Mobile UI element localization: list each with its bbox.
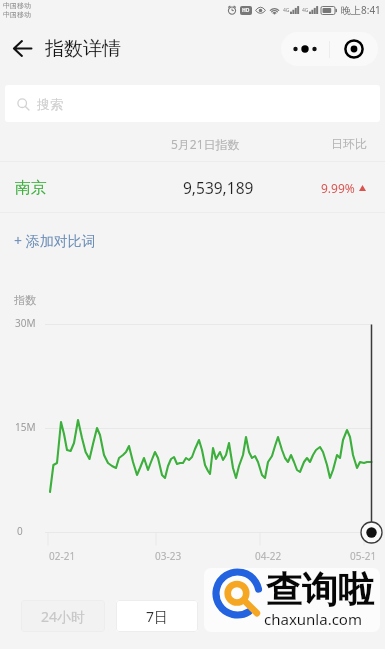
staticText: 02-21 [49, 549, 76, 563]
staticText: 晚上8:41 [341, 3, 381, 17]
staticText: + 添加对比词 [14, 231, 96, 250]
button[interactable]: 南京 [0, 162, 385, 213]
staticText: 30M [15, 316, 36, 330]
staticText: 30日 [236, 607, 267, 626]
staticText: 查询啦 [266, 568, 374, 612]
button[interactable]: + 添加对比词 [0, 213, 385, 273]
button[interactable]: 搜索 [5, 85, 380, 122]
staticText: 9.99% [321, 180, 355, 196]
staticText: 4G [283, 7, 290, 14]
button[interactable]: 24小时 [21, 600, 105, 632]
staticText: 03-23 [155, 549, 182, 563]
button[interactable]: Close mini program [330, 32, 378, 66]
staticText: 中国移动 [3, 10, 31, 19]
staticText: 24小时 [41, 607, 86, 626]
staticText: 05-21 [350, 549, 377, 563]
staticText: HD [242, 7, 250, 14]
staticText: 南京 [15, 178, 47, 198]
button[interactable]: 7日 [116, 600, 198, 632]
staticText: 7日 [146, 607, 169, 626]
button[interactable]: Back [8, 34, 36, 62]
staticText: 指数详情 [45, 37, 121, 61]
staticText: 0 [17, 524, 23, 538]
staticText: 04-22 [255, 549, 282, 563]
staticText: 4G [302, 7, 309, 14]
staticText: chaxunla.com [264, 609, 362, 629]
button[interactable]: 30日 [209, 600, 293, 632]
staticText: 日环比 [331, 136, 367, 151]
staticText: 9,539,189 [183, 177, 254, 198]
staticText: 中国移动 [3, 1, 31, 10]
staticText: 搜索 [37, 96, 63, 112]
staticText: 5月21日指数 [171, 136, 240, 152]
staticText: 15M [15, 420, 36, 434]
staticText: 指数 [14, 293, 36, 307]
button[interactable]: More options [281, 32, 329, 66]
